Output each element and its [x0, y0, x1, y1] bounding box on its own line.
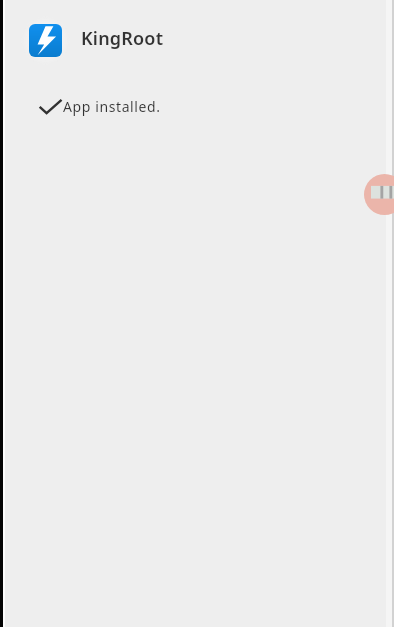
button[interactable]: Floating assistant	[364, 174, 394, 215]
button[interactable]: KingRoot app icon	[29, 24, 62, 57]
staticText: App installed.	[63, 97, 161, 116]
staticText: KingRoot	[81, 26, 164, 51]
other: Installed	[39, 99, 62, 114]
